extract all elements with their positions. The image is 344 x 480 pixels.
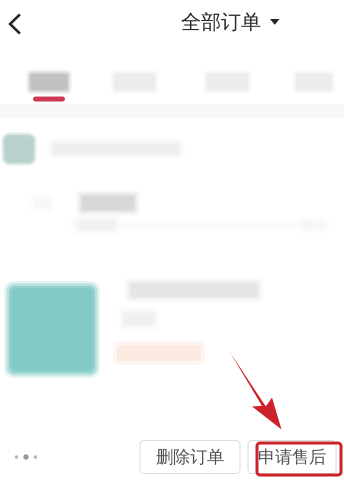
button[interactable]: 全部订单 xyxy=(181,8,280,36)
button[interactable]: 删除订单 xyxy=(140,440,240,473)
button[interactable]: 待发货 xyxy=(171,54,284,104)
staticText: 申请售后 xyxy=(258,446,326,468)
button[interactable]: 待收货 xyxy=(284,54,344,104)
button[interactable]: 返回 xyxy=(0,2,31,46)
button[interactable]: 店铺 xyxy=(0,127,344,171)
button[interactable]: 待付款 xyxy=(98,54,171,104)
button[interactable]: 更多 xyxy=(0,435,52,479)
button[interactable]: 申请售后 xyxy=(248,440,336,473)
button[interactable]: 全部 xyxy=(0,54,98,104)
staticText: 删除订单 xyxy=(156,446,224,468)
staticText: 全部订单 xyxy=(181,10,261,34)
